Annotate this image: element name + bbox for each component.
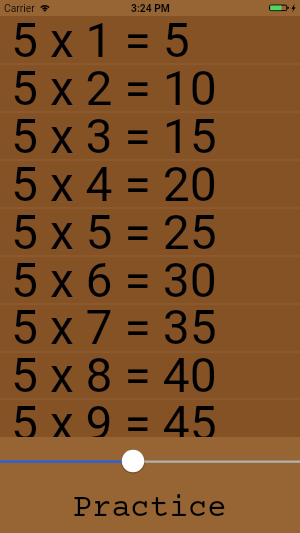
button[interactable]: 5 x 7 = 35 <box>0 303 300 351</box>
button[interactable]: 5 x 9 = 45 <box>0 399 300 437</box>
button[interactable]: 5 x 3 = 15 <box>0 112 300 160</box>
button[interactable]: 5 x 6 = 30 <box>0 256 300 304</box>
staticText: 5 x 9 = 45 <box>11 395 217 437</box>
staticText: 5 x 5 = 25 <box>11 204 217 252</box>
staticText: 5 x 4 = 20 <box>11 156 217 204</box>
staticText: 5 x 6 = 30 <box>11 252 217 300</box>
staticText: Practice <box>73 491 227 527</box>
button[interactable]: 5 x 4 = 20 <box>0 160 300 208</box>
staticText: 5 x 7 = 35 <box>11 299 217 347</box>
staticText: 3:24 PM <box>131 2 170 14</box>
other: Battery charging <box>269 3 298 13</box>
button[interactable]: 5 x 8 = 40 <box>0 351 300 399</box>
other: Wi-Fi signal <box>39 3 51 12</box>
staticText: 5 x 3 = 15 <box>11 108 217 156</box>
staticText: 5 x 8 = 40 <box>11 347 217 395</box>
button[interactable]: Times table slider <box>0 440 300 476</box>
button[interactable]: 5 x 2 = 10 <box>0 64 300 112</box>
button[interactable]: 5 x 1 = 5 <box>0 16 300 64</box>
button[interactable]: Practice <box>0 485 300 533</box>
staticText: Carrier <box>4 2 35 14</box>
staticText: 5 x 1 = 5 <box>11 16 190 60</box>
staticText: 5 x 2 = 10 <box>11 60 217 108</box>
button[interactable]: 5 x 5 = 25 <box>0 208 300 256</box>
